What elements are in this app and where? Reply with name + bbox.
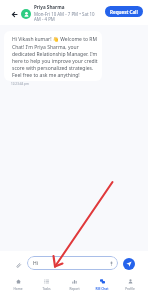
button[interactable]: Home <box>4 274 32 291</box>
button[interactable]: Hi <box>27 256 118 270</box>
staticText: Tasks <box>42 287 51 291</box>
staticText: 12:23:44 pm <box>11 82 29 86</box>
staticText: Home <box>13 287 23 291</box>
staticText: Profile <box>125 287 135 291</box>
staticText: Priya Sharma <box>34 4 65 10</box>
button[interactable]: Send <box>123 258 135 270</box>
staticText: Request Call <box>110 9 138 15</box>
staticText: Hi <box>33 260 38 267</box>
staticText: Hi Vikash kumar! 👋 Welcome to RM Chat! I… <box>12 36 99 78</box>
button[interactable]: Tasks <box>32 274 60 291</box>
button[interactable]: Back <box>9 9 20 20</box>
staticText: Report <box>69 287 80 291</box>
button[interactable]: Profile <box>116 274 144 291</box>
button[interactable]: Request Call <box>105 6 143 17</box>
button[interactable]: RM Chat <box>88 274 116 291</box>
button[interactable]: Attach file <box>12 259 23 270</box>
button[interactable]: Report <box>60 274 88 291</box>
staticText: Mon-Fri 10 AM - 7 PM • Sat 10 AM - 4 PM <box>34 11 95 22</box>
staticText: RM Chat <box>95 287 109 291</box>
